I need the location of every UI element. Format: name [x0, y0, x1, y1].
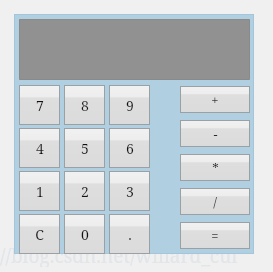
staticText: 8: [81, 96, 89, 115]
staticText: //blog.csdn.net/willard_cui: [0, 243, 238, 267]
staticText: /: [213, 193, 217, 211]
button[interactable]: 6: [109, 128, 150, 168]
button[interactable]: *: [180, 154, 250, 181]
staticText: 7: [36, 96, 44, 115]
staticText: 9: [126, 96, 134, 115]
staticText: C: [35, 225, 44, 244]
button[interactable]: 1: [19, 171, 60, 211]
button[interactable]: C: [19, 214, 60, 254]
staticText: 6: [126, 139, 134, 158]
button[interactable]: 3: [109, 171, 150, 211]
button[interactable]: =: [180, 222, 250, 249]
button[interactable]: 0: [64, 214, 105, 254]
button[interactable]: 5: [64, 128, 105, 168]
button[interactable]: 4: [19, 128, 60, 168]
button[interactable]: -: [180, 120, 250, 147]
staticText: -: [213, 125, 218, 143]
staticText: 4: [36, 139, 44, 158]
button[interactable]: +: [180, 86, 250, 113]
button[interactable]: 2: [64, 171, 105, 211]
staticText: .: [128, 225, 132, 244]
staticText: *: [212, 159, 219, 177]
staticText: 5: [81, 139, 89, 158]
staticText: +: [211, 91, 219, 109]
staticText: =: [211, 227, 219, 245]
button[interactable]: 9: [109, 85, 150, 125]
staticText: 1: [36, 182, 44, 201]
staticText: 2: [81, 182, 89, 201]
button[interactable]: 7: [19, 85, 60, 125]
button[interactable]: /: [180, 188, 250, 215]
staticText: 0: [81, 225, 89, 244]
button[interactable]: .: [109, 214, 150, 254]
staticText: 3: [126, 182, 134, 201]
button[interactable]: 8: [64, 85, 105, 125]
